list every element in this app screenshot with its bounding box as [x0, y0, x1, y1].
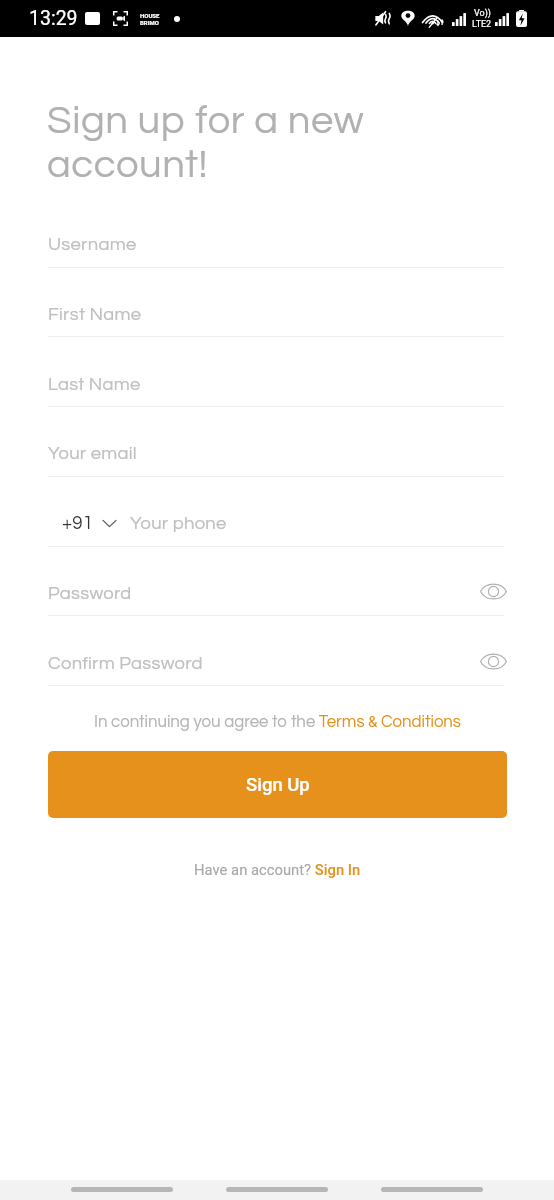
- button[interactable]: Recents: [71, 1187, 173, 1192]
- button[interactable]: Sign Up: [48, 751, 507, 818]
- staticText: +91: [62, 514, 94, 533]
- button[interactable]: Have an account? Sign In: [194, 861, 361, 878]
- staticText: Your email: [48, 444, 137, 463]
- button[interactable]: Show password: [475, 643, 511, 679]
- staticText: Password: [48, 584, 132, 603]
- staticText: Sign up for a new account!: [47, 100, 365, 186]
- staticText: Vo)): [474, 8, 491, 19]
- button[interactable]: +91: [62, 508, 116, 538]
- button[interactable]: Username: [48, 229, 408, 259]
- button[interactable]: In continuing you agree to the Terms & C…: [94, 713, 461, 731]
- staticText: Username: [48, 235, 137, 254]
- button[interactable]: Back: [381, 1187, 483, 1192]
- button[interactable]: Home: [226, 1187, 328, 1192]
- button[interactable]: First Name: [48, 299, 408, 329]
- staticText: HOUSE: [140, 12, 160, 19]
- button[interactable]: Confirm Password: [48, 648, 408, 678]
- staticText: Sign Up: [246, 774, 310, 796]
- staticText: Your phone: [130, 514, 227, 533]
- staticText: Confirm Password: [48, 654, 203, 673]
- staticText: Have an account? Sign In: [194, 861, 361, 878]
- staticText: In continuing you agree to the Terms & C…: [94, 713, 461, 731]
- button[interactable]: Last Name: [48, 369, 408, 399]
- staticText: LTE2: [472, 19, 492, 30]
- button[interactable]: Password: [48, 578, 408, 608]
- staticText: First Name: [48, 305, 142, 324]
- staticText: BRIMO: [140, 19, 159, 26]
- staticText: Last Name: [48, 375, 141, 394]
- staticText: 13:29: [29, 7, 78, 30]
- button[interactable]: Your email: [48, 438, 408, 468]
- button[interactable]: Show password: [475, 573, 511, 609]
- button[interactable]: Your phone: [130, 508, 390, 538]
